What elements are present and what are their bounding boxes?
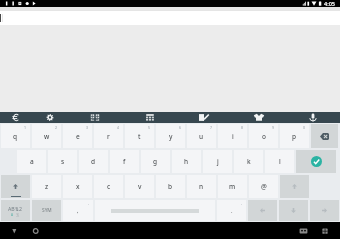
- button[interactable]: b: [156, 175, 185, 198]
- staticText: -: [241, 201, 243, 206]
- button[interactable]: Down: [279, 200, 308, 221]
- button[interactable]: Split keyboard: [78, 112, 112, 123]
- button[interactable]: m: [218, 175, 247, 198]
- button[interactable]: Left: [248, 200, 277, 221]
- staticText: h: [184, 157, 189, 166]
- button[interactable]: j: [203, 150, 232, 173]
- button[interactable]: Recents: [289, 222, 317, 239]
- button[interactable]: l: [265, 150, 294, 173]
- staticText: s: [61, 157, 65, 166]
- button[interactable]: Right: [310, 200, 339, 221]
- staticText: SYM: [42, 207, 52, 214]
- staticText: q: [13, 132, 18, 141]
- staticText: z: [45, 182, 49, 191]
- staticText: b: [168, 182, 173, 191]
- staticText: p: [292, 132, 297, 141]
- button[interactable]: e: [63, 124, 92, 148]
- button[interactable]: Hide keyboard: [0, 222, 28, 239]
- button[interactable]: Handwriting: [187, 112, 221, 123]
- button[interactable]: Menu: [311, 222, 339, 239]
- button[interactable]: o: [249, 124, 278, 148]
- staticText: t: [138, 132, 141, 141]
- staticText: A: [11, 213, 14, 217]
- staticText: 8: [241, 125, 244, 130]
- button[interactable]: s: [48, 150, 77, 173]
- button[interactable]: ,: [63, 200, 93, 221]
- staticText: o: [262, 132, 266, 141]
- button[interactable]: n: [187, 175, 216, 198]
- staticText: 6: [179, 125, 182, 130]
- staticText: f: [123, 157, 126, 166]
- staticText: 2: [55, 125, 58, 130]
- button[interactable]: Settings: [33, 112, 67, 123]
- staticText: w: [44, 132, 50, 141]
- staticText: e: [76, 132, 80, 141]
- button[interactable]: a: [17, 150, 46, 173]
- staticText: x: [76, 182, 80, 191]
- button[interactable]: Space: [95, 200, 215, 221]
- staticText: .: [231, 207, 233, 214]
- button[interactable]: r: [94, 124, 123, 148]
- button[interactable]: c: [94, 175, 123, 198]
- staticText: k: [247, 157, 251, 166]
- button[interactable]: p: [280, 124, 309, 148]
- button[interactable]: f: [110, 150, 139, 173]
- button[interactable]: v: [125, 175, 154, 198]
- staticText: -: [88, 201, 90, 206]
- staticText: m: [229, 182, 236, 191]
- button[interactable]: @: [249, 175, 278, 198]
- button[interactable]: t: [125, 124, 154, 148]
- button[interactable]: Voice input: [296, 112, 330, 123]
- staticText: u: [199, 132, 204, 141]
- button[interactable]: q: [1, 124, 30, 148]
- button[interactable]: Theme: [242, 112, 276, 123]
- staticText: r: [107, 132, 110, 141]
- staticText: 五: [16, 213, 20, 217]
- staticText: 5: [148, 125, 151, 130]
- staticText: a: [30, 157, 34, 166]
- button[interactable]: z: [32, 175, 61, 198]
- staticText: 1: [24, 125, 27, 130]
- button[interactable]: y: [156, 124, 185, 148]
- staticText: AB⇅2: [8, 205, 23, 212]
- button[interactable]: k: [234, 150, 263, 173]
- button[interactable]: d: [79, 150, 108, 173]
- staticText: 9: [272, 125, 275, 130]
- staticText: i: [232, 132, 234, 141]
- button[interactable]: x: [63, 175, 92, 198]
- button[interactable]: Up: [280, 175, 309, 198]
- staticText: @: [261, 182, 267, 191]
- staticText: v: [138, 182, 142, 191]
- staticText: l: [279, 157, 281, 166]
- staticText: d: [91, 157, 96, 166]
- button[interactable]: w: [32, 124, 61, 148]
- button[interactable]: Change language: [1, 200, 30, 221]
- staticText: c: [107, 182, 111, 191]
- staticText: g: [153, 157, 158, 166]
- button[interactable]: u: [187, 124, 216, 148]
- button[interactable]: Home: [22, 222, 50, 239]
- staticText: 4: [117, 125, 120, 130]
- staticText: ,: [77, 207, 79, 214]
- button[interactable]: g: [141, 150, 170, 173]
- staticText: 4:05: [324, 0, 335, 7]
- staticText: y: [169, 132, 173, 141]
- button[interactable]: SYM: [32, 200, 61, 221]
- button[interactable]: Shift: [1, 175, 30, 198]
- button[interactable]: Backspace: [311, 124, 338, 148]
- button[interactable]: Enter: [296, 150, 336, 173]
- staticText: 7: [210, 125, 213, 130]
- button[interactable]: h: [172, 150, 201, 173]
- button[interactable]: Keyboard layout: [133, 112, 167, 123]
- staticText: j: [217, 157, 219, 166]
- button[interactable]: i: [218, 124, 247, 148]
- staticText: 0: [303, 125, 306, 130]
- staticText: 3: [86, 125, 89, 130]
- staticText: n: [199, 182, 204, 191]
- button[interactable]: Symbols: [0, 112, 33, 123]
